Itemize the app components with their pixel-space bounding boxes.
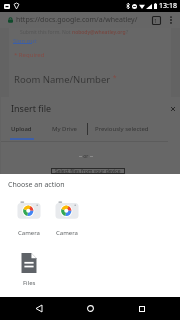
staticText: Submit this form. Not [20,29,72,36]
staticText: My Drive [52,125,77,133]
staticText: Room Name/Number [14,73,111,86]
staticText: Upload [11,125,32,133]
button[interactable]: Recent apps [129,297,155,320]
staticText: Camera [56,229,78,237]
staticText: Select files from your device [55,168,121,174]
button[interactable]: My Drive [42,122,87,136]
button[interactable]: Tabs [149,13,163,27]
staticText: Files [23,279,36,287]
button[interactable]: Back [26,297,52,320]
button[interactable]: Select files from your device [51,168,125,174]
button[interactable]: Files [10,252,48,287]
button[interactable]: Home [77,297,103,320]
staticText: or [82,153,90,160]
staticText: Camera [18,229,40,237]
staticText: https://docs.google.com/a/wheatley/ [16,15,138,25]
button[interactable]: Camera [10,200,48,237]
button[interactable]: Sign out [13,37,37,45]
staticText: nobody@wheatley.org [72,29,126,36]
button[interactable]: Close dialog [166,101,180,116]
staticText: Insert file [11,102,52,114]
staticText: 13:18 [159,1,177,11]
staticText: ? [126,29,129,36]
button[interactable]: More options [164,13,178,27]
staticText: * [111,73,117,83]
button[interactable]: Camera [48,200,86,237]
button[interactable]: Previously selected [88,122,156,136]
staticText: Previously selected [95,125,149,133]
staticText: Choose an action [8,180,65,190]
staticText: 1 [154,17,158,24]
staticText: * Required [14,51,45,59]
button[interactable]: Upload [1,122,42,136]
